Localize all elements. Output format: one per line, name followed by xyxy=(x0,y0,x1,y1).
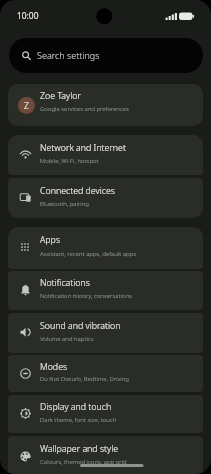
button[interactable]: Z xyxy=(8,84,203,126)
staticText: Z xyxy=(24,100,29,112)
staticText: Mobile, Wi-Fi, hotspot xyxy=(40,157,99,165)
staticText: 10:00 xyxy=(17,10,39,21)
staticText: Zoe Taylor xyxy=(40,90,81,102)
staticText: Apps xyxy=(40,234,61,246)
staticText: Network and Internet xyxy=(40,142,126,154)
staticText: Volume and haptics xyxy=(40,335,94,343)
staticText: Assistant, recent apps, default apps xyxy=(40,250,137,258)
button[interactable]: Connected devices xyxy=(8,178,203,218)
staticText: Modes xyxy=(40,361,68,373)
button[interactable]: Wallpaper and style xyxy=(8,436,203,474)
staticText: Do Not Disturb, Bedtime, Driving xyxy=(40,375,129,383)
button[interactable]: Display and touch xyxy=(8,395,203,433)
staticText: Wallpaper and style xyxy=(40,443,119,455)
button[interactable]: Network and Internet xyxy=(8,135,203,175)
staticText: Notifications xyxy=(40,277,90,289)
staticText: Notification history, conversations xyxy=(40,292,132,300)
button[interactable]: Search settings xyxy=(9,38,203,73)
button[interactable]: Sound and vibration xyxy=(8,313,203,353)
button[interactable]: Notifications xyxy=(8,271,203,310)
staticText: Google services and preferences xyxy=(40,105,129,113)
staticText: Bluetooth, pairing xyxy=(40,200,89,208)
staticText: Sound and vibration xyxy=(40,320,121,332)
staticText: Connected devices xyxy=(40,185,115,197)
staticText: Display and touch xyxy=(40,401,112,413)
button[interactable]: Modes xyxy=(8,355,203,392)
staticText: Search settings xyxy=(37,49,100,61)
staticText: Dark theme, font size, touch xyxy=(40,416,117,424)
staticText: Colours, themed icons, app grid xyxy=(40,458,127,466)
button[interactable]: Apps xyxy=(8,227,203,269)
